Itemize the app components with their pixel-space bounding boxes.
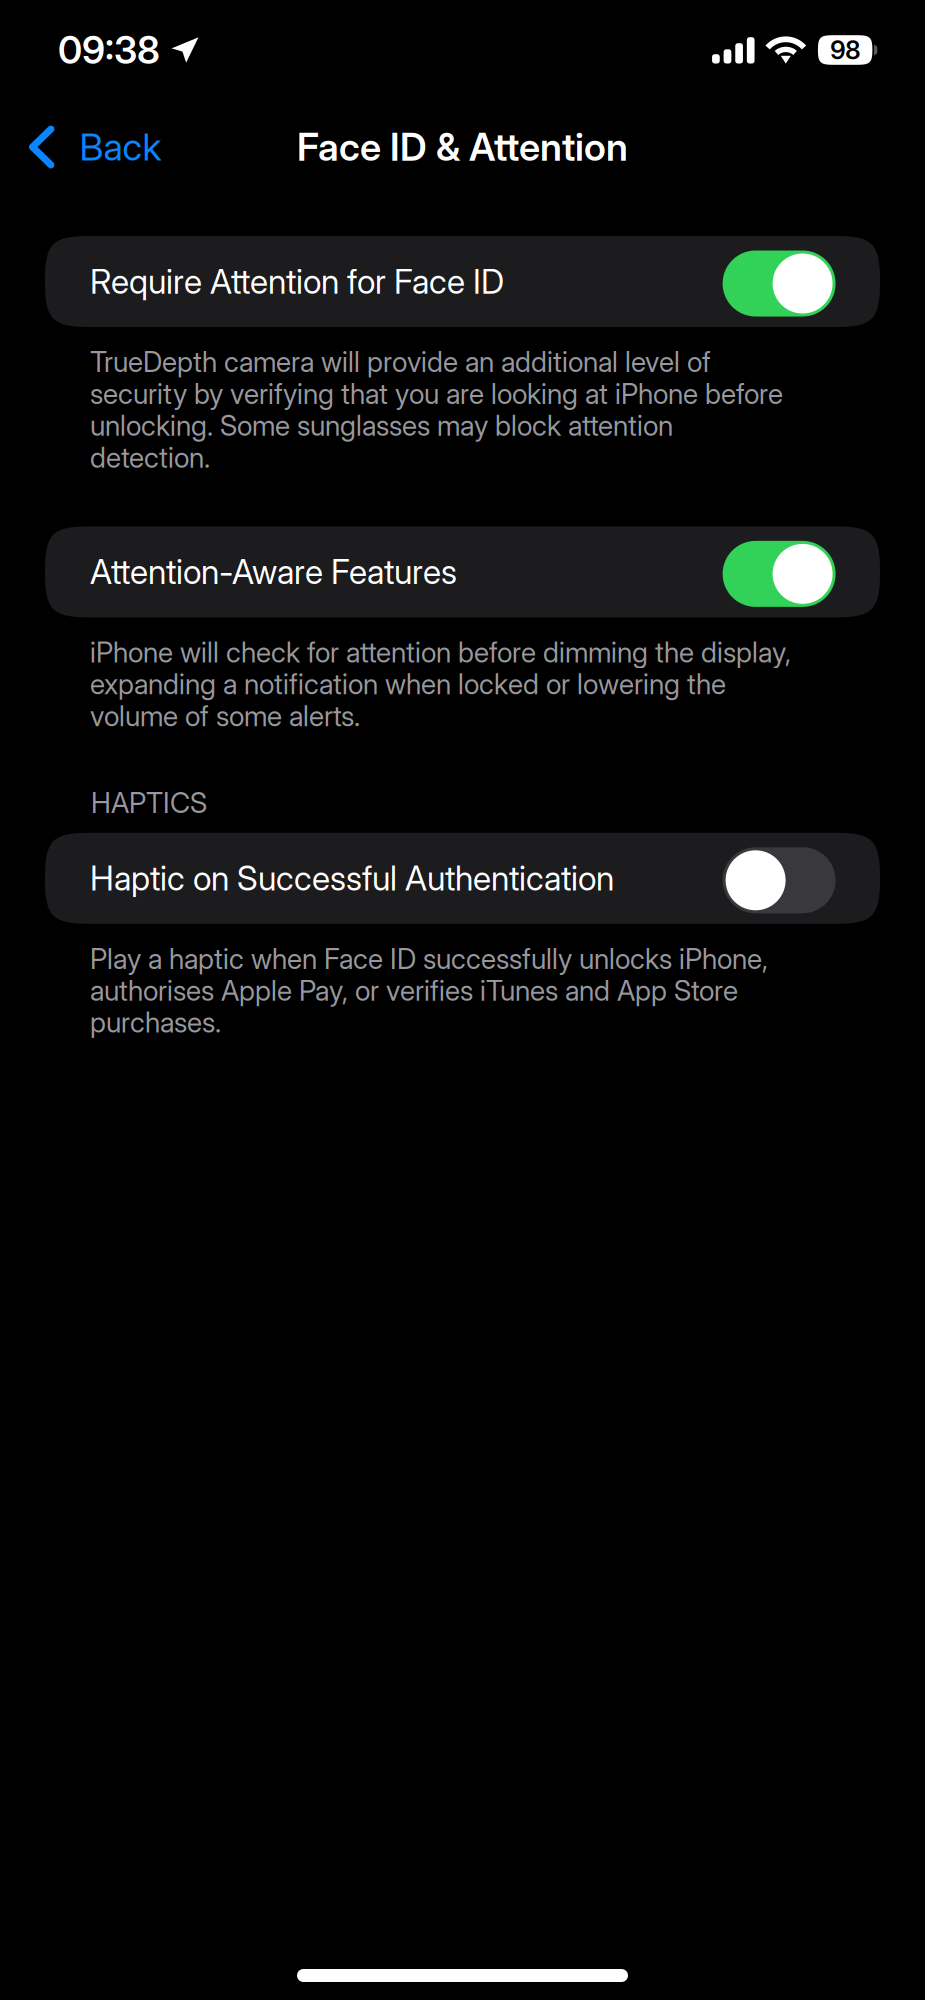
staticText: Require Attention for Face ID [90, 261, 504, 302]
staticText: TrueDepth camera will provide an additio… [90, 346, 783, 473]
button[interactable]: Back [0, 115, 181, 179]
staticText: Haptic on Successful Authentication [90, 858, 614, 899]
button[interactable]: Require Attention for Face ID [45, 236, 880, 327]
button[interactable]: Haptic on Successful Authentication [45, 833, 880, 924]
staticText: iPhone will check for attention before d… [90, 636, 791, 732]
staticText: Face ID & Attention [297, 124, 628, 170]
staticText: 98 [830, 35, 860, 65]
button[interactable]: Attention-Aware Features [45, 526, 880, 617]
staticText: HAPTICS [91, 786, 207, 820]
staticText: Attention-Aware Features [90, 552, 457, 592]
staticText: 09:38 [58, 27, 160, 73]
staticText: Play a haptic when Face ID successfully … [90, 943, 768, 1038]
staticText: Back [79, 124, 161, 170]
